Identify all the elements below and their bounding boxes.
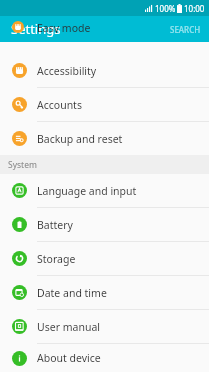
staticText: Language and input [37,184,137,198]
staticText: Battery [37,218,73,232]
button[interactable]: SEARCH [162,20,209,39]
button[interactable]: About device [0,344,209,372]
staticText: SEARCH [170,24,201,35]
staticText: Settings [11,20,61,38]
button[interactable]: Accounts [0,88,209,122]
staticText: About device [37,351,101,365]
staticText: Accessibility [37,64,97,78]
button[interactable]: Storage [0,242,209,276]
button[interactable]: Battery [0,208,209,242]
staticText: System [8,159,37,171]
staticText: Accounts [37,98,82,112]
button[interactable]: Accessibility [0,54,209,88]
staticText: Backup and reset [37,132,123,146]
staticText: Easy mode [37,21,91,33]
button[interactable]: User manual [0,310,209,344]
button[interactable]: Language and input [0,174,209,208]
staticText: Storage [37,252,76,266]
staticText: User manual [37,320,100,334]
button[interactable]: Date and time [0,276,209,310]
button[interactable]: Backup and reset [0,122,209,155]
staticText: 10:00 [184,3,205,14]
staticText: Date and time [37,286,107,300]
staticText: 100% [155,3,176,14]
